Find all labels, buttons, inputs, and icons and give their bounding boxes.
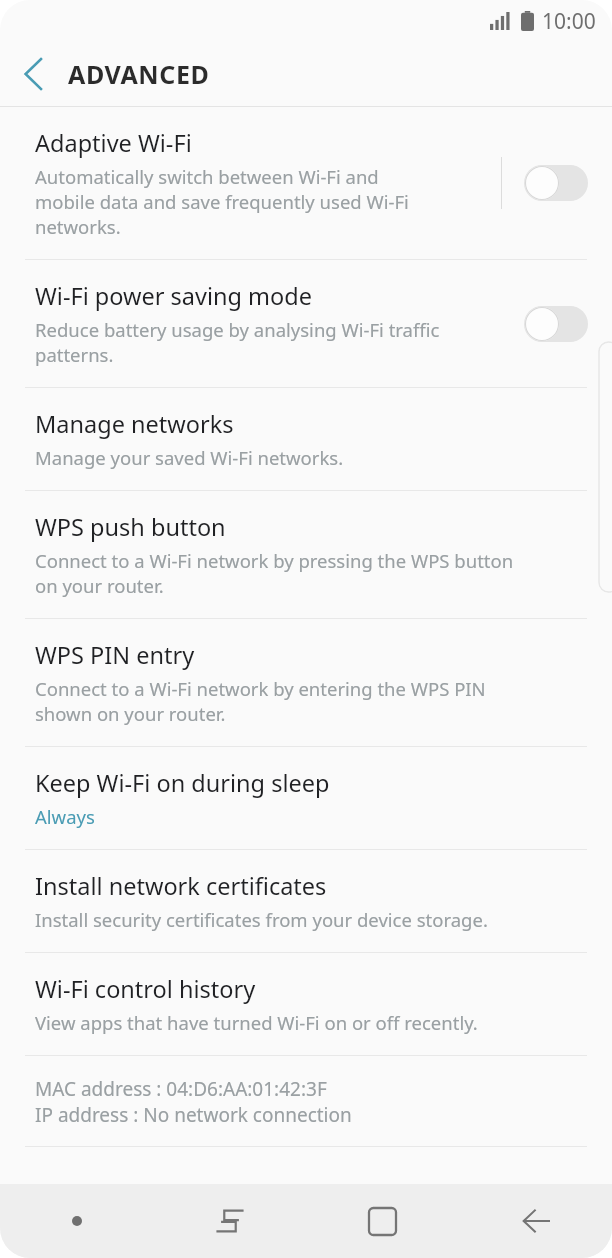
button[interactable]: Menu indicator <box>0 1184 153 1258</box>
staticText: IP address : No network connection <box>35 1102 352 1128</box>
staticText: Connect to a Wi-Fi network by pressing t… <box>35 548 514 598</box>
staticText: Install network certificates <box>35 870 327 902</box>
button[interactable] <box>524 306 588 342</box>
staticText: Manage your saved Wi-Fi networks. <box>35 445 344 470</box>
staticText: Always <box>35 804 95 829</box>
button[interactable]: Back <box>459 1184 612 1258</box>
button[interactable] <box>524 165 588 201</box>
button[interactable]: WPS PIN entry <box>0 619 612 746</box>
staticText: Wi-Fi power saving mode <box>35 280 313 312</box>
staticText: 10:00 <box>542 7 596 36</box>
staticText: Install security certificates from your … <box>35 907 488 932</box>
staticText: View apps that have turned Wi-Fi on or o… <box>35 1010 478 1035</box>
button[interactable]: Wi-Fi power saving mode <box>0 260 612 387</box>
button[interactable]: WPS push button <box>0 491 612 618</box>
staticText: ADVANCED <box>68 57 210 91</box>
staticText: WPS PIN entry <box>35 639 195 671</box>
staticText: Reduce battery usage by analysing Wi-Fi … <box>35 317 440 367</box>
button[interactable]: Install network certificates <box>0 850 612 952</box>
staticText: MAC address : 04:D6:AA:01:42:3F <box>35 1076 327 1102</box>
staticText: Manage networks <box>35 408 234 440</box>
button[interactable]: Keep Wi-Fi on during sleep <box>0 747 612 849</box>
button[interactable]: Adaptive Wi-Fi <box>0 107 612 259</box>
staticText: Connect to a Wi-Fi network by entering t… <box>35 676 486 726</box>
button[interactable]: Manage networks <box>0 388 612 490</box>
button[interactable]: Navigate up <box>0 42 68 106</box>
staticText: Adaptive Wi-Fi <box>35 127 192 159</box>
staticText: WPS push button <box>35 511 226 543</box>
staticText: Keep Wi-Fi on during sleep <box>35 767 330 799</box>
button[interactable]: Home <box>306 1184 459 1258</box>
button[interactable]: Recent apps <box>153 1184 306 1258</box>
staticText: Wi-Fi control history <box>35 973 256 1005</box>
staticText: Automatically switch between Wi-Fi and m… <box>35 164 409 239</box>
button[interactable]: Wi-Fi control history <box>0 953 612 1055</box>
